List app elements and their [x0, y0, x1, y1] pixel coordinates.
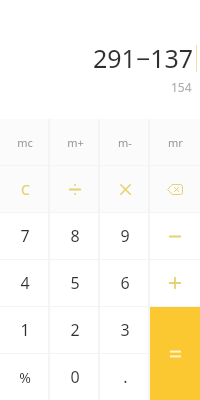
staticText: 3	[120, 319, 130, 341]
button[interactable]: Divide	[50, 166, 100, 212]
staticText: 6	[120, 272, 130, 294]
staticText: 5	[70, 272, 80, 294]
button[interactable]: mc	[0, 119, 50, 165]
staticText: C	[21, 180, 30, 199]
button[interactable]: 7	[0, 213, 50, 259]
button[interactable]: 4	[0, 260, 50, 306]
staticText: 1	[20, 319, 30, 341]
button[interactable]: Equals	[150, 307, 200, 400]
button[interactable]: Plus	[150, 260, 200, 306]
staticText: %	[19, 368, 31, 387]
staticText: 8	[70, 225, 80, 247]
staticText: 7	[20, 225, 30, 247]
button[interactable]: 5	[50, 260, 100, 306]
button[interactable]: 3	[100, 307, 150, 353]
staticText: 4	[20, 272, 30, 294]
button[interactable]: 0	[50, 354, 100, 400]
staticText: 9	[120, 225, 130, 247]
staticText: 0	[70, 366, 80, 388]
button[interactable]: m+	[50, 119, 100, 165]
button[interactable]: 6	[100, 260, 150, 306]
staticText: 291−137	[93, 41, 194, 75]
button[interactable]: 9	[100, 213, 150, 259]
staticText: 154	[171, 79, 192, 95]
button[interactable]: 8	[50, 213, 100, 259]
button[interactable]: 1	[0, 307, 50, 353]
staticText: 2	[70, 319, 80, 341]
button[interactable]: C	[0, 166, 50, 212]
button[interactable]: Multiply	[100, 166, 150, 212]
button[interactable]: .	[100, 354, 150, 400]
button[interactable]: m-	[100, 119, 150, 165]
button[interactable]: 2	[50, 307, 100, 353]
staticText: mr	[168, 135, 183, 150]
button[interactable]: Backspace	[150, 166, 200, 212]
staticText: m-	[118, 135, 132, 150]
staticText: mc	[17, 135, 33, 150]
button[interactable]: mr	[150, 119, 200, 165]
staticText: .	[123, 366, 128, 388]
button[interactable]: Minus	[150, 213, 200, 259]
staticText: m+	[67, 135, 84, 150]
button[interactable]: %	[0, 354, 50, 400]
